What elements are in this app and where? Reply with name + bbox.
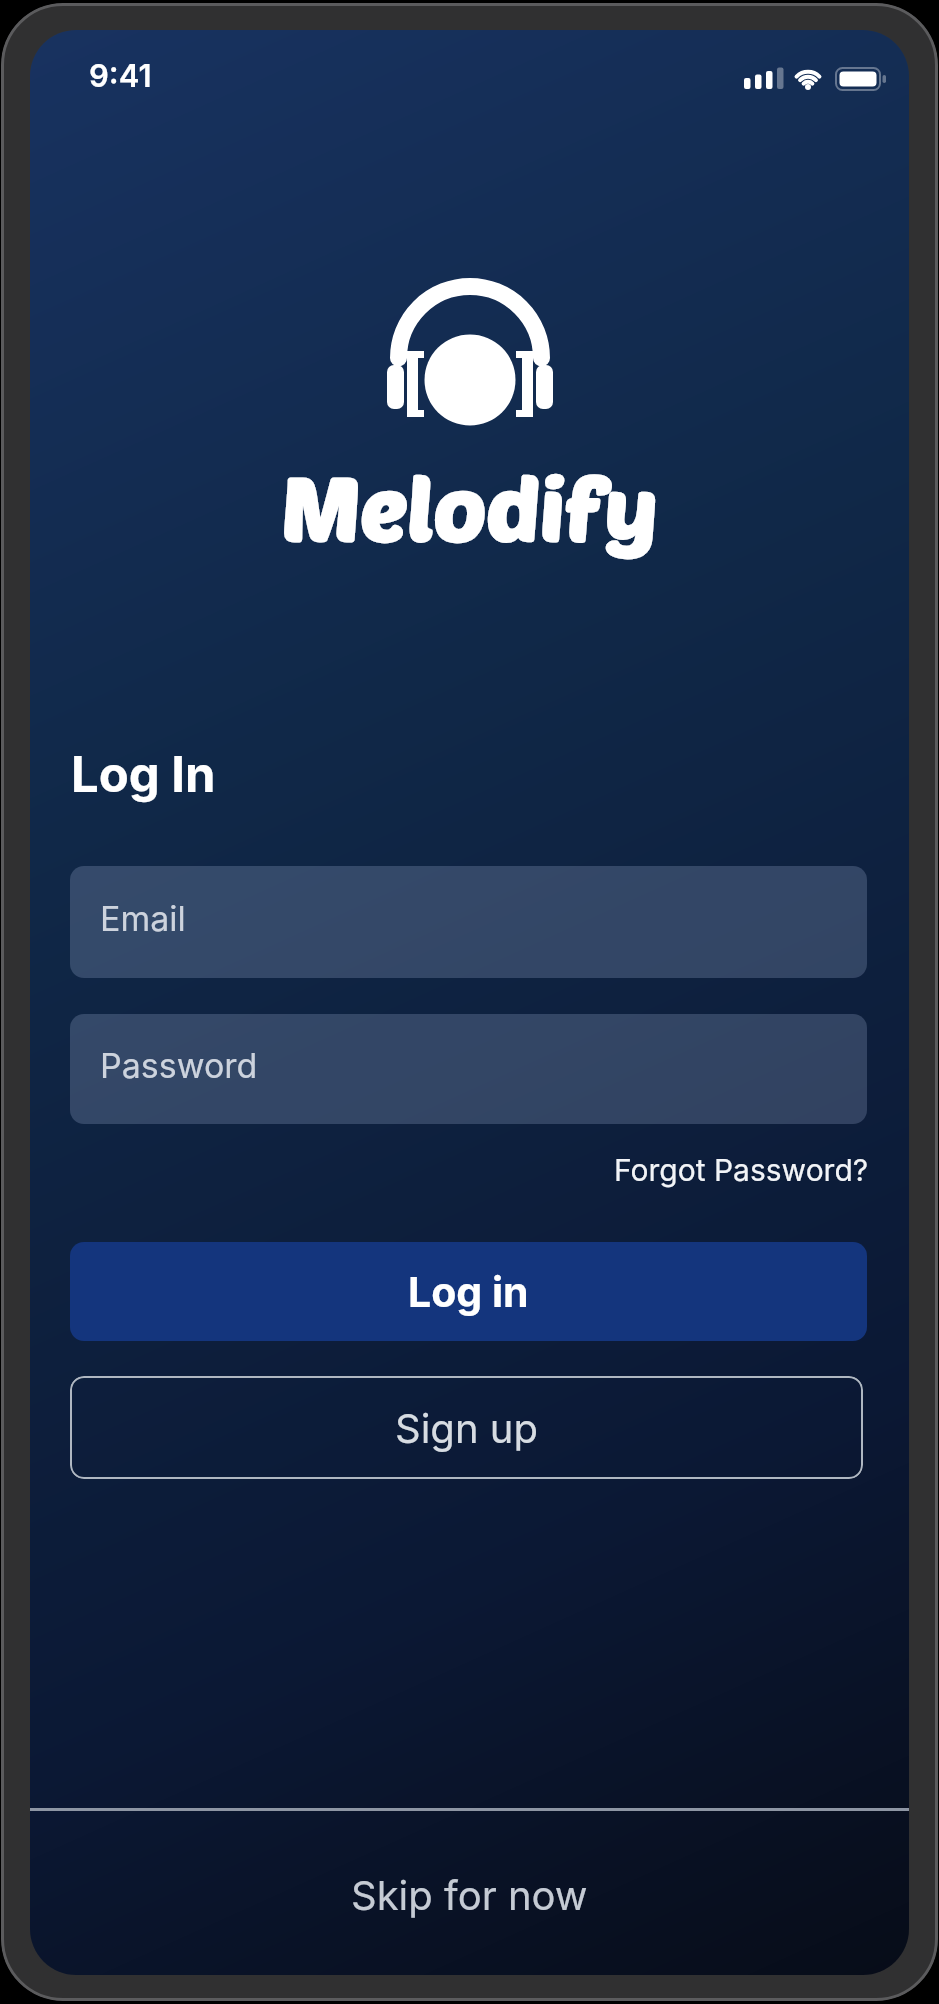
staticText: Log In [71,745,216,804]
staticText: Log in [408,1267,529,1317]
staticText: Email [100,898,186,939]
button[interactable]: Email [70,866,867,978]
button[interactable]: Sign up [70,1376,863,1479]
button[interactable]: Skip for now [30,1814,909,1975]
staticText: Sign up [395,1404,538,1452]
staticText: Password [100,1045,258,1086]
staticText: Skip for now [351,1871,588,1919]
button[interactable]: Forgot Password? [614,1152,869,1188]
button[interactable]: Log in [70,1242,867,1341]
button[interactable]: Password [70,1014,867,1124]
staticText: Melodify [30,453,909,559]
staticText: 9:41 [89,57,152,95]
